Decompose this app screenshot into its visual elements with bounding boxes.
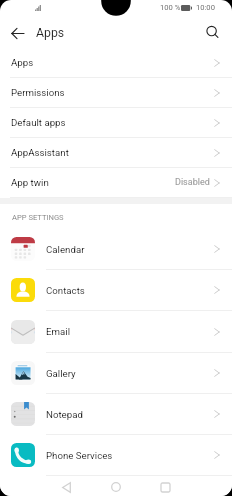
button[interactable]: Email <box>0 311 232 353</box>
button[interactable]: Home <box>102 476 130 496</box>
staticText: APP SETTINGS <box>12 213 64 222</box>
staticText: Phone Services <box>46 450 113 461</box>
button[interactable]: AppAssistant <box>0 138 232 168</box>
staticText: Permissions <box>11 87 65 98</box>
button[interactable]: Phone Services <box>0 435 232 476</box>
staticText: App twin <box>11 177 49 188</box>
staticText: Notepad <box>46 409 83 420</box>
staticText: Disabled <box>175 177 210 188</box>
button[interactable]: Permissions <box>0 78 232 108</box>
staticText: 10:00 <box>196 3 215 12</box>
button[interactable]: Notepad <box>0 394 232 435</box>
staticText: AppAssistant <box>11 147 69 158</box>
button[interactable]: Search <box>199 19 227 47</box>
staticText: Email <box>46 326 70 337</box>
button[interactable]: Back <box>52 476 80 496</box>
button[interactable]: Recents <box>151 476 179 496</box>
button[interactable]: Apps <box>0 48 232 78</box>
button[interactable]: Contacts <box>0 270 232 311</box>
button[interactable]: Default apps <box>0 108 232 138</box>
button[interactable]: Back <box>3 19 31 47</box>
staticText: Calendar <box>46 244 85 255</box>
button[interactable]: Calendar <box>0 229 232 270</box>
staticText: Apps <box>11 57 34 68</box>
staticText: Gallery <box>46 368 76 379</box>
button[interactable]: Gallery <box>0 353 232 394</box>
staticText: Default apps <box>11 117 66 128</box>
staticText: Contacts <box>46 285 85 296</box>
button[interactable]: App twin <box>0 168 232 198</box>
staticText: Apps <box>36 26 65 40</box>
staticText: 100 % <box>160 3 181 12</box>
